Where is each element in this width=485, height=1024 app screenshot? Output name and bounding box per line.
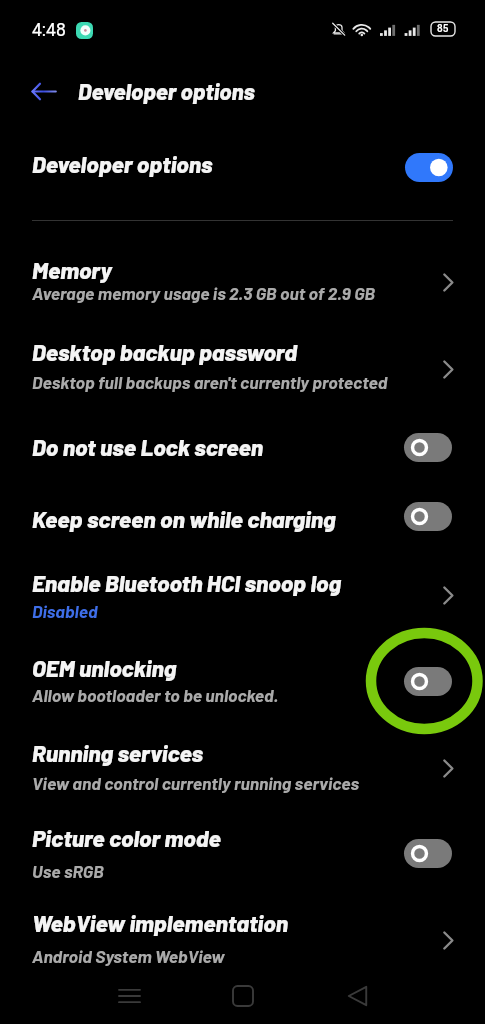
staticText: Picture color mode <box>32 824 221 852</box>
staticText: Running services <box>32 739 203 767</box>
button[interactable]: Home <box>214 967 272 1024</box>
button[interactable]: WebView implementation <box>0 890 485 976</box>
button[interactable]: Memory <box>0 237 485 313</box>
staticText: 85 <box>437 23 449 35</box>
staticText: Disabled <box>32 600 98 621</box>
staticText: Enable Bluetooth HCI snoop log <box>32 569 341 597</box>
staticText: Use sRGB <box>32 860 104 881</box>
button[interactable]: Picture color mode <box>0 805 485 891</box>
staticText: Average memory usage is 2.3 GB out of 2.… <box>32 282 376 303</box>
button[interactable]: Enable Bluetooth HCI snoop log <box>0 550 485 631</box>
staticText: Developer options <box>32 150 213 178</box>
staticText: OEM unlocking <box>32 654 177 682</box>
staticText: Desktop full backups aren't currently pr… <box>32 371 388 392</box>
button[interactable]: Keep screen on while charging <box>0 486 485 538</box>
staticText: Keep screen on while charging <box>32 505 336 533</box>
button[interactable]: Running services <box>0 720 485 803</box>
staticText: Android System WebView <box>32 945 225 966</box>
button[interactable]: Desktop backup password <box>0 319 485 402</box>
staticText: Desktop backup password <box>32 338 297 366</box>
staticText: Allow bootloader to be unlocked. <box>32 684 279 705</box>
staticText: Developer options <box>78 77 255 104</box>
staticText: Memory <box>32 256 112 284</box>
staticText: Do not use Lock screen <box>32 433 263 461</box>
button[interactable]: OEM unlocking <box>0 635 485 715</box>
staticText: WebView implementation <box>32 909 288 937</box>
button[interactable]: Developer options <box>0 136 485 194</box>
staticText: 4:48 <box>32 20 66 41</box>
button[interactable]: Recent apps <box>100 967 158 1024</box>
button[interactable]: Do not use Lock screen <box>0 414 485 466</box>
staticText: View and control currently running servi… <box>32 772 359 793</box>
button[interactable]: Back <box>328 967 386 1024</box>
button[interactable]: Back <box>24 72 62 110</box>
